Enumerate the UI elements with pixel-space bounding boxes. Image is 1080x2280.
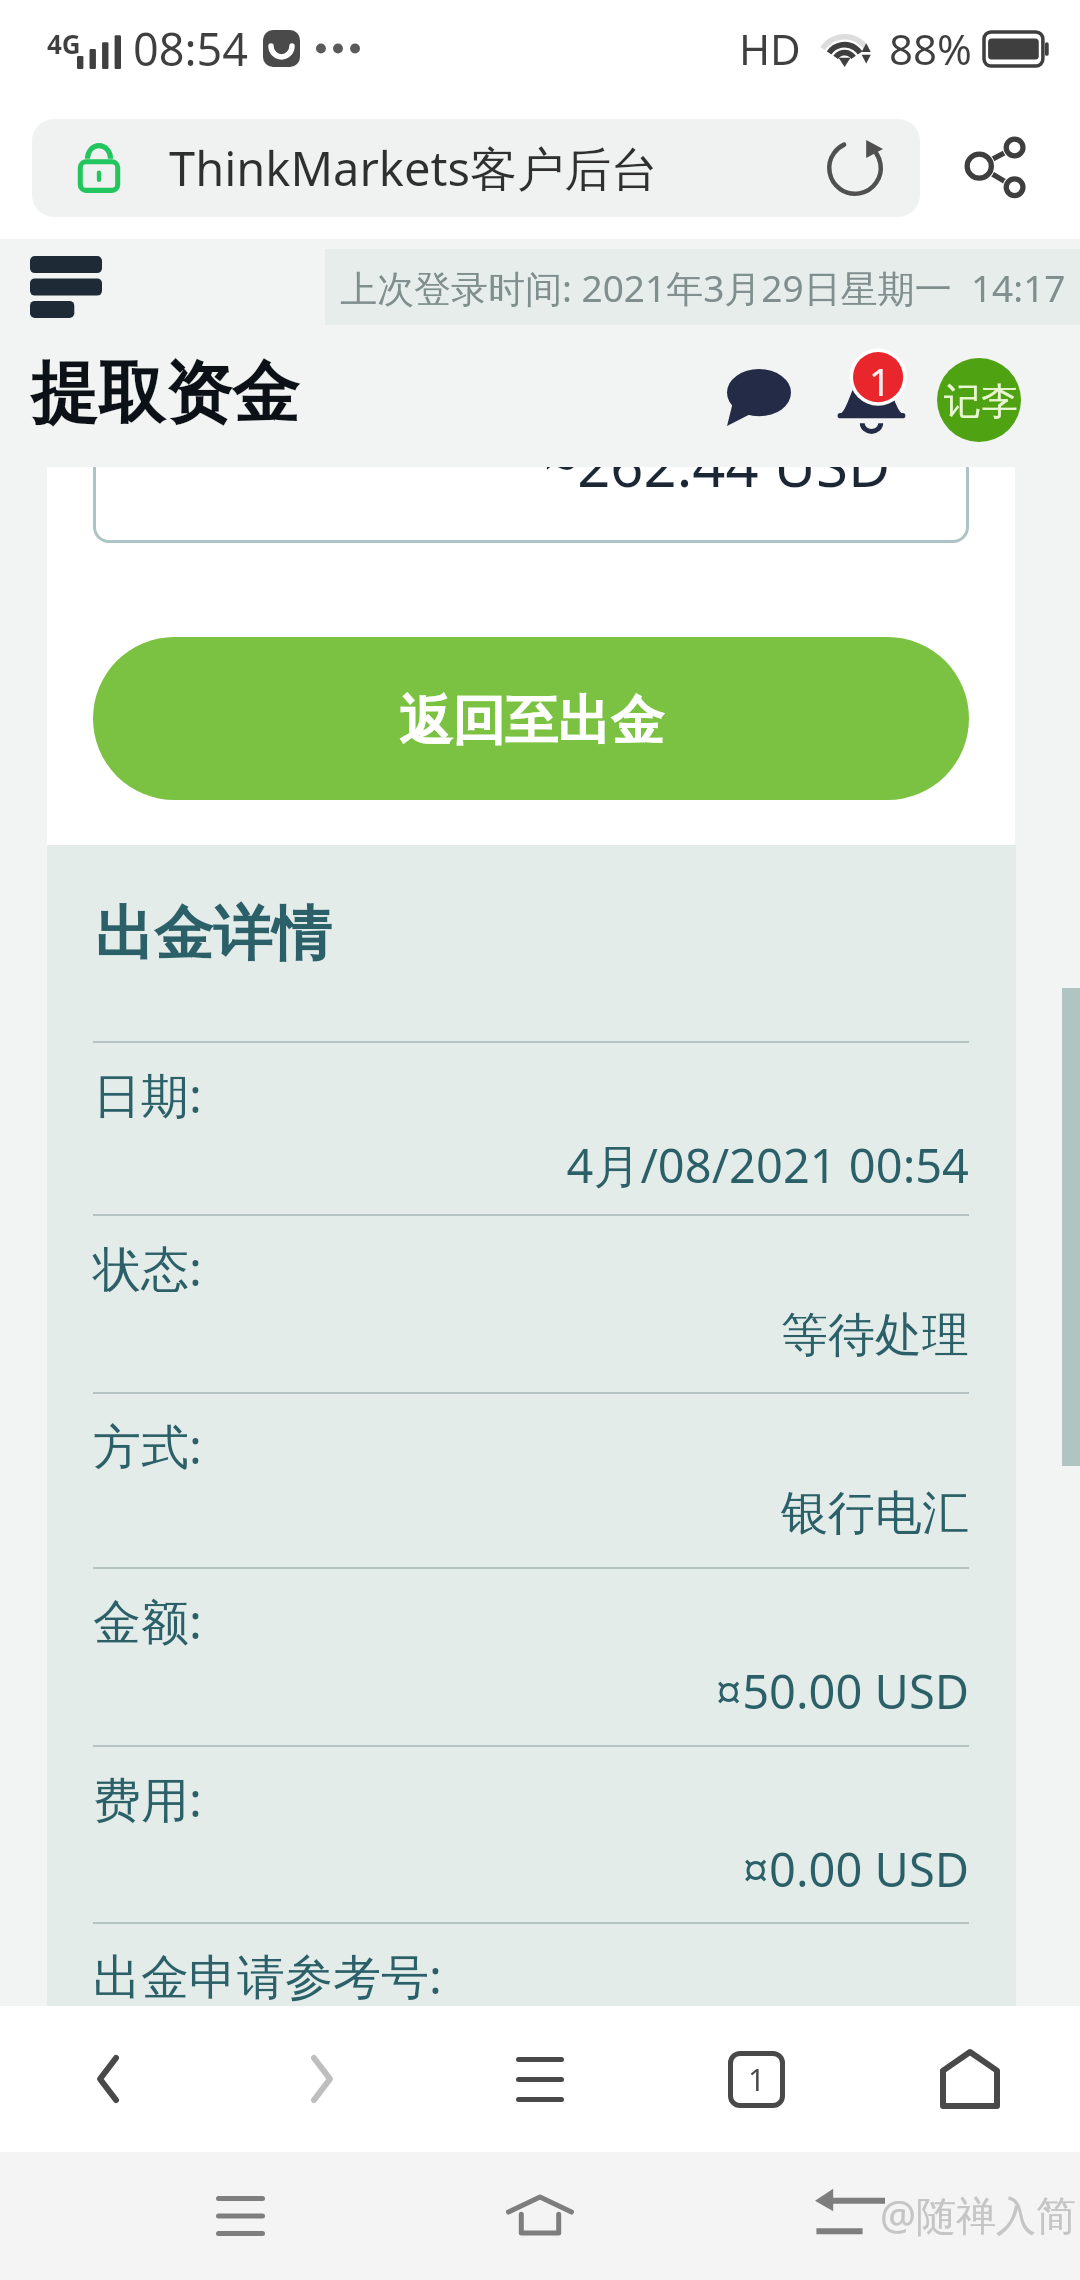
- staticText: 方式:: [93, 1413, 202, 1479]
- staticText: HD: [739, 20, 801, 77]
- staticText: 4G: [47, 26, 81, 61]
- staticText: ¤0.00 USD: [93, 1837, 969, 1901]
- staticText: 出金申请参考号:: [93, 1943, 442, 2006]
- staticText: 费用:: [93, 1766, 202, 1832]
- button[interactable]: Menu: [18, 239, 114, 335]
- button[interactable]: Menu: [480, 2019, 600, 2139]
- button[interactable]: Notifications: [822, 339, 927, 443]
- staticText: 4月/08/2021 00:54: [93, 1133, 969, 1197]
- button[interactable]: Forward: [262, 2019, 382, 2139]
- staticText: 返回至出金: [399, 688, 664, 755]
- staticText: ~262.44 USD: [544, 467, 891, 504]
- staticText: 金额:: [93, 1588, 202, 1654]
- staticText: ThinkMarkets客户后台: [169, 136, 658, 200]
- button[interactable]: 记李: [937, 358, 1021, 442]
- button[interactable]: Home: [910, 2019, 1030, 2139]
- button[interactable]: Share: [948, 120, 1044, 216]
- button[interactable]: Back: [48, 2019, 168, 2139]
- button[interactable]: 返回至出金: [93, 637, 969, 800]
- staticText: 银行电汇: [93, 1484, 969, 1543]
- staticText: ¤50.00 USD: [93, 1659, 969, 1723]
- staticText: 1: [869, 355, 891, 407]
- button[interactable]: Messages: [707, 349, 811, 445]
- staticText: 状态:: [93, 1235, 202, 1301]
- button[interactable]: Tabs: [696, 2019, 816, 2139]
- staticText: 提取资金: [31, 351, 299, 435]
- button[interactable]: ThinkMarkets客户后台: [32, 119, 920, 217]
- staticText: 上次登录时间: 2021年3月29日星期一 14:17: [340, 262, 1066, 313]
- staticText: 1: [748, 2059, 766, 2100]
- staticText: 记李: [944, 378, 1018, 425]
- staticText: @随禅入简: [880, 2187, 1076, 2242]
- button[interactable]: Back: [790, 2156, 910, 2276]
- button[interactable]: Home: [480, 2156, 600, 2276]
- staticText: 日期:: [93, 1062, 202, 1128]
- staticText: 出金详情: [95, 897, 331, 971]
- staticText: 88%: [889, 20, 972, 77]
- staticText: 08:54: [133, 18, 249, 79]
- button[interactable]: Reload: [822, 135, 888, 201]
- staticText: 等待处理: [93, 1306, 969, 1365]
- button[interactable]: Recents: [180, 2156, 300, 2276]
